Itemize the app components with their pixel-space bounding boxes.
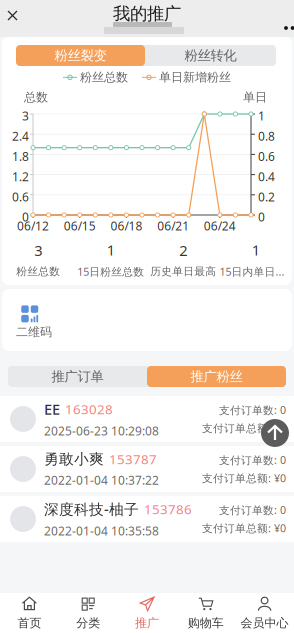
button[interactable]: 首页 [0, 593, 59, 633]
staticText: 0 [258, 209, 265, 225]
button[interactable]: 购物车 [176, 593, 235, 633]
staticText: 1 [258, 108, 265, 124]
staticText: 推广粉丝 [190, 368, 242, 385]
staticText: 0.4 [258, 169, 275, 184]
staticText: 总数 [24, 90, 48, 105]
staticText: 1 [252, 240, 260, 259]
staticText: 3 [34, 240, 42, 260]
staticText: 支付订单数: 0 [219, 503, 286, 517]
staticText: 153787 [109, 450, 157, 468]
button[interactable]: EE [0, 396, 294, 442]
staticText: 2025-06-23 10:29:08 [44, 423, 159, 439]
button[interactable]: 深度科技-柚子 [0, 496, 294, 542]
button[interactable]: Close [2, 3, 30, 29]
staticText: 历史单日最高 [150, 265, 216, 278]
staticText: 06/15 [64, 218, 96, 234]
button[interactable]: 二维码 [2, 289, 60, 351]
button[interactable]: 勇敢小爽 [0, 446, 294, 492]
staticText: 粉丝总数 [80, 70, 128, 85]
staticText: 单日 [243, 90, 267, 105]
staticText: 支付订单数: 0 [219, 403, 286, 417]
staticText: 1 [107, 240, 115, 259]
staticText: 单日新增粉丝 [159, 70, 231, 85]
staticText: 3 [22, 108, 29, 124]
staticText: 购物车 [188, 616, 224, 630]
button[interactable]: 推广订单 [8, 366, 147, 387]
staticText: 2 [179, 240, 187, 260]
staticText: 06/12 [17, 218, 49, 234]
staticText: 支付订单总额: ¥0 [202, 471, 286, 485]
staticText: EE [44, 399, 60, 419]
button[interactable]: 分类 [59, 593, 118, 633]
staticText: 2.4 [12, 128, 29, 144]
staticText: 推广订单 [51, 368, 103, 385]
staticText: 粉丝裂变 [54, 47, 106, 64]
staticText: 支付订单总额: ¥0 [202, 421, 286, 435]
button[interactable]: 粉丝转化 [145, 45, 276, 66]
staticText: 二维码 [16, 325, 52, 339]
button[interactable]: 粉丝裂变 [16, 45, 145, 66]
staticText: 1.2 [12, 169, 29, 184]
staticText: 15日粉丝总数 [77, 264, 144, 279]
staticText: 首页 [17, 616, 41, 630]
button[interactable]: More options [258, 4, 292, 30]
staticText: 0.8 [258, 128, 275, 144]
staticText: 0 [22, 209, 29, 225]
button[interactable]: 推广 [118, 593, 176, 633]
staticText: 2022-01-04 10:37:22 [44, 472, 159, 488]
staticText: 06/21 [157, 218, 189, 234]
staticText: 1.8 [12, 148, 29, 164]
staticText: 153786 [144, 500, 192, 518]
staticText: 推广 [135, 616, 159, 630]
staticText: 粉丝转化 [184, 47, 236, 64]
staticText: 支付订单数: 0 [219, 453, 286, 467]
staticText: 分类 [76, 616, 100, 630]
staticText: 深度科技-柚子 [44, 499, 139, 519]
button[interactable]: 会员中心 [235, 593, 294, 633]
staticText: 06/18 [110, 218, 142, 234]
staticText: 粉丝总数 [16, 265, 60, 278]
staticText: 勇敢小爽 [44, 450, 104, 468]
staticText: 06/24 [204, 218, 236, 234]
staticText: 0.6 [258, 148, 275, 164]
staticText: 我的推广 [113, 3, 181, 24]
staticText: 163028 [65, 400, 113, 418]
staticText: 0.6 [12, 189, 29, 205]
staticText: 15日内单日最高 [219, 264, 292, 279]
staticText: 会员中心 [241, 616, 289, 630]
button[interactable]: 推广粉丝 [147, 366, 286, 387]
staticText: 2022-01-04 10:35:58 [44, 523, 159, 539]
staticText: 支付订单总额: ¥0 [202, 521, 286, 535]
staticText: 0.2 [258, 189, 275, 205]
button[interactable]: Back to top [261, 419, 289, 447]
